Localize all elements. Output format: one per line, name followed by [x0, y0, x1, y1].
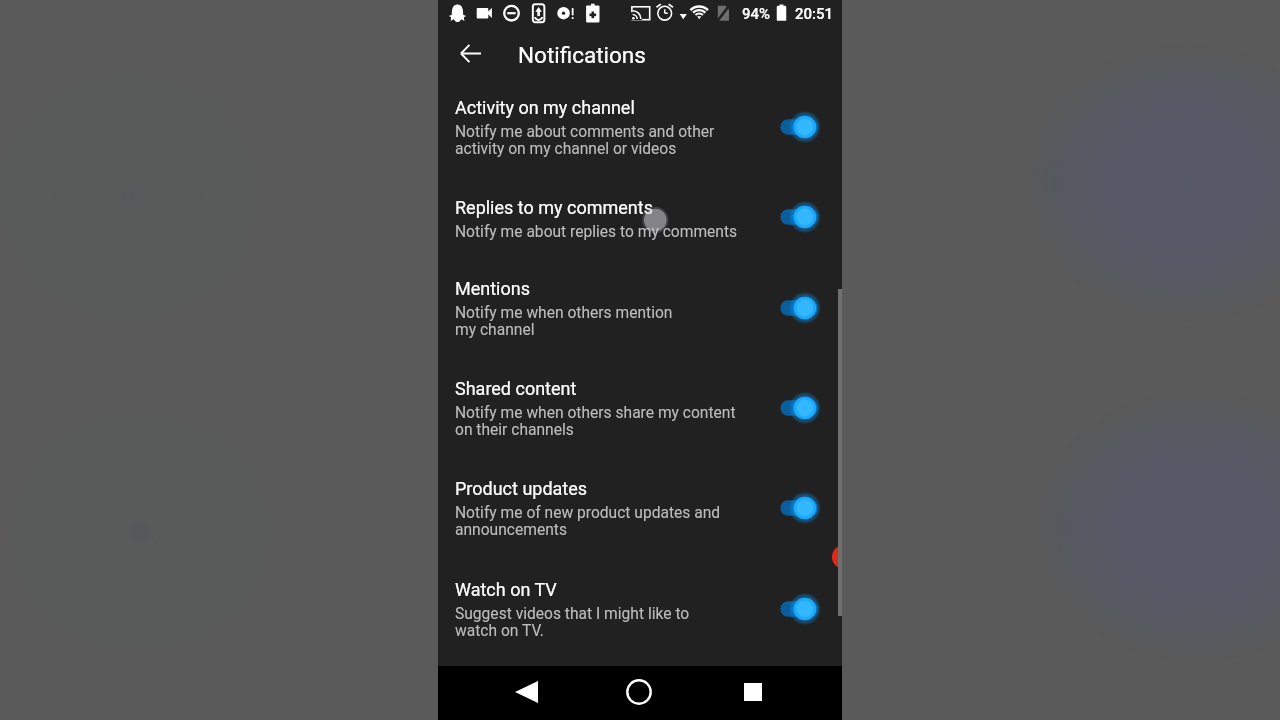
staticText: Notify me about comments and other [455, 123, 715, 141]
button[interactable]: Toggle Activity on my channel [772, 113, 824, 141]
button[interactable]: Back [502, 666, 550, 720]
staticText: Activity on my channel [455, 97, 635, 118]
staticText: Notify me when others mention [455, 304, 673, 322]
button[interactable]: Replies to my comments [438, 176, 842, 256]
button[interactable]: Product updates [438, 457, 842, 557]
button[interactable]: Mentions [438, 257, 842, 357]
staticText: Suggest videos that I might like to [455, 605, 690, 623]
staticText: announcements [455, 521, 567, 539]
button[interactable]: Toggle Replies to my comments [772, 203, 824, 231]
button[interactable]: Toggle Mentions [772, 294, 824, 322]
staticText: Notify me about replies to my comments [455, 223, 738, 241]
staticText: Shared content [455, 378, 577, 399]
button[interactable]: Toggle Product updates [772, 494, 824, 522]
button[interactable]: Shared content [438, 357, 842, 457]
staticText: Notify me when others share my content [455, 404, 736, 422]
staticText: Mentions [455, 278, 530, 299]
button[interactable]: Back [446, 29, 494, 77]
staticText: watch on TV. [455, 622, 544, 640]
staticText: Watch on TV [455, 579, 557, 600]
staticText: 20:51 [795, 5, 834, 23]
button[interactable]: Watch on TV [438, 558, 842, 658]
button[interactable]: Activity on my channel [438, 76, 842, 176]
staticText: 94% [742, 5, 771, 23]
button[interactable]: Home [615, 666, 663, 720]
staticText: on their channels [455, 421, 574, 439]
staticText: Product updates [455, 478, 588, 499]
staticText: Replies to my comments [455, 197, 653, 218]
button[interactable]: Toggle Watch on TV [772, 595, 824, 623]
button[interactable]: Toggle Shared content [772, 394, 824, 422]
staticText: Notifications [518, 42, 646, 68]
button[interactable]: Recent apps [729, 666, 777, 720]
staticText: my channel [455, 321, 535, 339]
staticText: Notify me of new product updates and [455, 504, 721, 522]
staticText: activity on my channel or videos [455, 140, 677, 158]
